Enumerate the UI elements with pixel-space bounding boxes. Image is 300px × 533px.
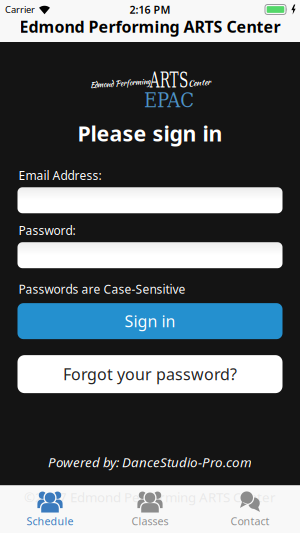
staticText: Center: [188, 76, 210, 89]
staticText: ARTS: [138, 67, 200, 93]
staticText: Passwords are Case-Sensitive: [18, 281, 185, 297]
staticText: EPAC: [140, 88, 198, 112]
staticText: Sign in: [124, 310, 175, 332]
staticText: ©2017 Edmond Performing ARTS Center: [24, 488, 276, 506]
button[interactable]: Forgot your password?: [17, 355, 282, 393]
button[interactable]: Password: [17, 242, 282, 268]
staticText: Powered by: DanceStudio-Pro.com: [48, 453, 252, 471]
staticText: Forgot your password?: [63, 363, 237, 385]
button[interactable]: Contact: [200, 490, 300, 528]
staticText: Carrier: [5, 3, 35, 16]
button[interactable]: Email Address: [17, 187, 282, 213]
button[interactable]: Powered by: DanceStudio-Pro.com: [48, 453, 252, 471]
staticText: Please sign in: [77, 119, 222, 147]
button[interactable]: Sign in: [17, 303, 282, 339]
staticText: Schedule: [26, 514, 73, 528]
staticText: Classes: [131, 514, 168, 528]
staticText: Password:: [18, 222, 75, 238]
staticText: Edmond Performing ARTS Center: [19, 16, 280, 37]
staticText: Contact: [230, 514, 269, 528]
button[interactable]: Schedule: [0, 490, 100, 528]
button[interactable]: Classes: [100, 490, 200, 528]
staticText: 2:16 PM: [129, 2, 170, 17]
staticText: Edmond Performing: [90, 78, 150, 89]
staticText: Email Address:: [18, 167, 101, 183]
